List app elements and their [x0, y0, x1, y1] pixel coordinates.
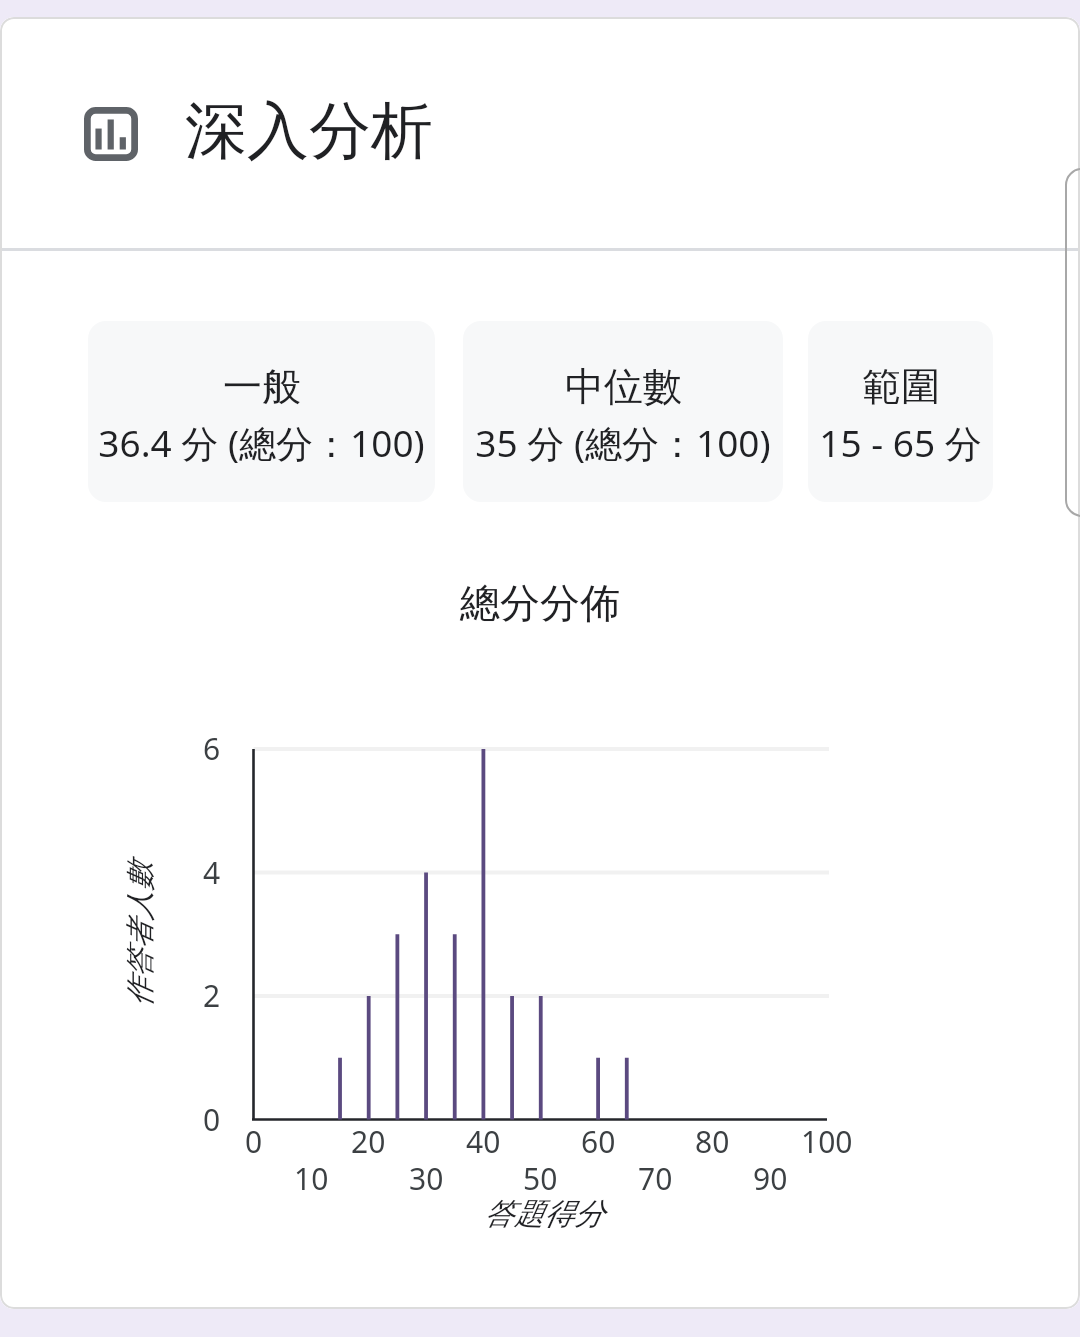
staticText: 2: [203, 975, 221, 1016]
staticText: 4: [203, 852, 221, 893]
staticText: 0: [203, 1099, 221, 1140]
staticText: 一般: [223, 362, 301, 411]
staticText: 15 - 65 分: [819, 417, 982, 468]
staticText: 35 分 (總分：100): [475, 417, 771, 468]
staticText: 20: [351, 1121, 386, 1161]
staticText: 作答者人數: [122, 862, 159, 1007]
staticText: 答題得分: [484, 1195, 604, 1233]
staticText: 深入分析: [185, 92, 433, 170]
button[interactable]: 一般: [88, 321, 435, 502]
staticText: 100: [801, 1121, 853, 1161]
staticText: 70: [638, 1158, 673, 1198]
staticText: 範圍: [862, 362, 940, 411]
button[interactable]: 中位數: [463, 321, 783, 502]
staticText: 6: [203, 728, 221, 769]
staticText: 60: [581, 1121, 616, 1161]
staticText: 40: [466, 1121, 501, 1161]
staticText: 中位數: [565, 362, 682, 411]
staticText: 90: [753, 1158, 788, 1198]
staticText: 總分分佈: [460, 578, 620, 628]
staticText: 30: [409, 1158, 444, 1198]
staticText: 80: [695, 1121, 730, 1161]
other: Analytics: [84, 107, 138, 161]
staticText: 0: [245, 1121, 263, 1161]
button[interactable]: Analytics: [0, 17, 1080, 244]
staticText: 10: [294, 1158, 329, 1198]
button[interactable]: 範圍: [808, 321, 993, 502]
other: Scroll: [1065, 168, 1080, 517]
staticText: 50: [523, 1158, 558, 1198]
staticText: 36.4 分 (總分：100): [98, 417, 425, 468]
